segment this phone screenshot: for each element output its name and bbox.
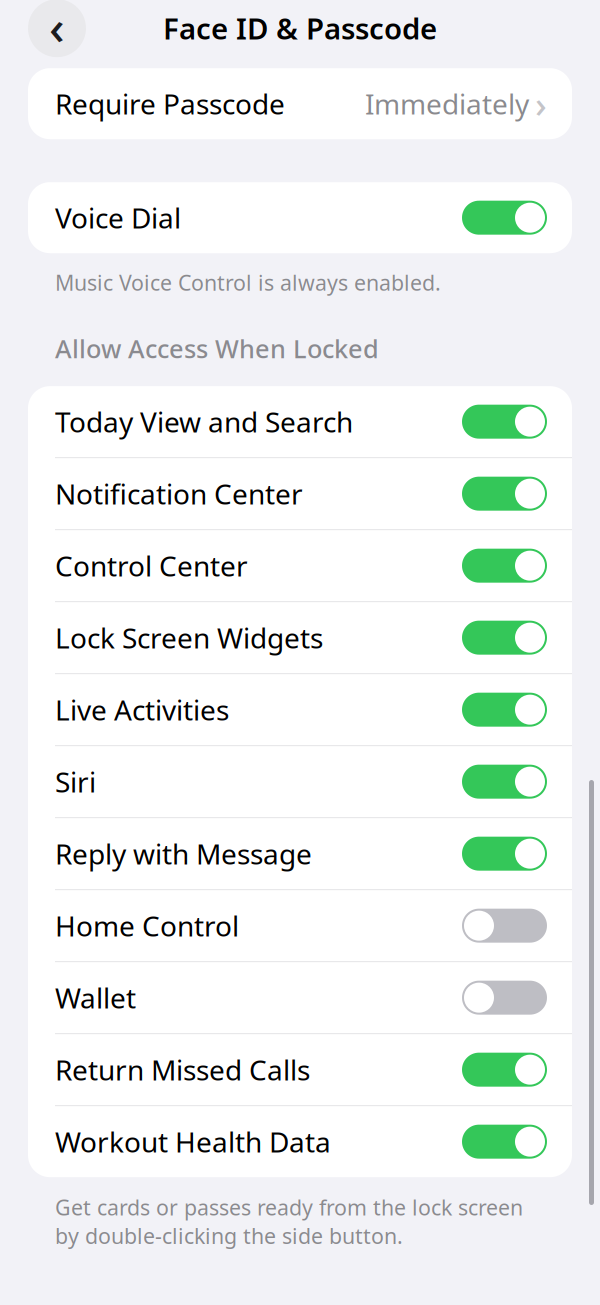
staticText: Lock Screen Widgets (55, 619, 323, 656)
button[interactable]: Home Control (28, 890, 572, 961)
staticText: › (535, 80, 547, 128)
staticText: Require Passcode (55, 85, 285, 122)
button[interactable]: Siri (28, 746, 572, 817)
button[interactable]: Reply with Message (28, 818, 572, 889)
staticText: Today View and Search (55, 403, 353, 440)
staticText: Get cards or passes ready from the lock … (55, 1193, 523, 1250)
staticText: Home Control (55, 907, 239, 944)
button[interactable]: Live Activities (28, 674, 572, 745)
staticText: Return Missed Calls (55, 1051, 310, 1088)
staticText: Voice Dial (55, 199, 181, 236)
button[interactable]: Lock Screen Widgets (28, 602, 572, 673)
staticText: ‹ (49, 0, 65, 58)
button[interactable]: Require Passcode (28, 68, 572, 139)
staticText (529, 95, 535, 112)
button[interactable]: Return Missed Calls (28, 1034, 572, 1105)
button[interactable]: Today View and Search (28, 386, 572, 457)
staticText: Control Center (55, 547, 248, 584)
button[interactable]: Wallet (28, 962, 572, 1033)
staticText: Notification Center (55, 475, 303, 512)
staticText: Face ID & Passcode (163, 9, 437, 48)
button[interactable]: Back (28, 0, 86, 57)
button[interactable]: Workout Health Data (28, 1106, 572, 1177)
staticText: Reply with Message (55, 835, 312, 872)
staticText: Live Activities (55, 691, 229, 728)
staticText: Allow Access When Locked (55, 331, 379, 365)
staticText: Workout Health Data (55, 1123, 331, 1160)
staticText: Siri (55, 763, 96, 800)
staticText: Immediately (365, 85, 529, 122)
button[interactable]: Control Center (28, 530, 572, 601)
staticText: Music Voice Control is always enabled. (55, 268, 441, 296)
button[interactable]: Notification Center (28, 458, 572, 529)
button[interactable]: Voice Dial (28, 182, 572, 253)
staticText: Wallet (55, 979, 136, 1016)
